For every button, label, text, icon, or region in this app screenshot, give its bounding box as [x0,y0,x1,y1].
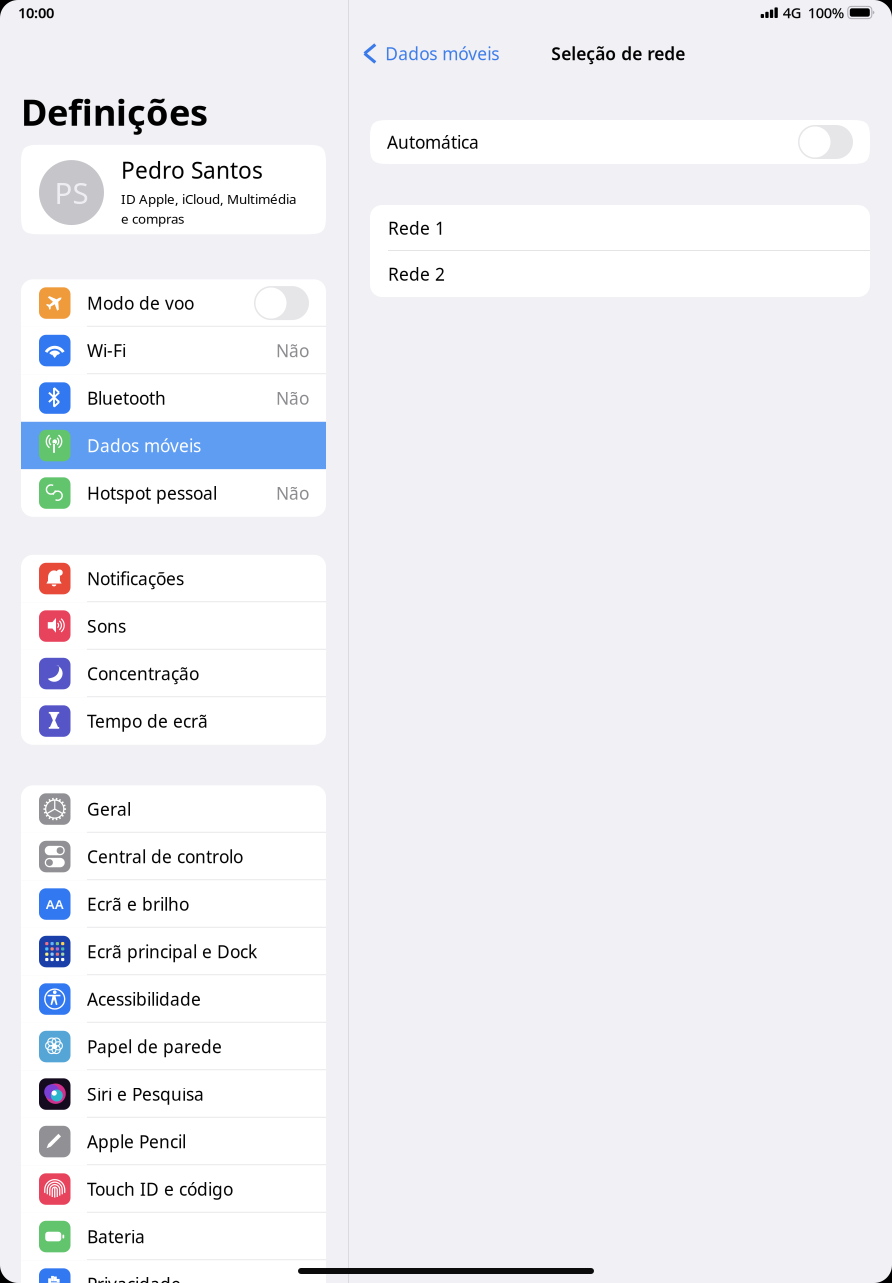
staticText: AA [46,895,64,913]
staticText: Siri e Pesquisa [87,1082,204,1105]
button[interactable]: Wi-Fi [21,327,326,374]
staticText: Não [276,339,309,362]
button[interactable]: Sons [21,602,326,650]
staticText: Bateria [87,1225,145,1248]
staticText: Bluetooth [87,386,166,409]
staticText: Tempo de ecrã [87,709,208,732]
staticText: 100% [808,3,844,22]
button[interactable]: Papel de parede [21,1023,326,1070]
staticText: Não [276,386,309,409]
staticText: Apple Pencil [87,1130,186,1153]
button[interactable]: Automática [370,120,870,164]
staticText: PS [54,173,88,212]
button[interactable]: Siri e Pesquisa [21,1070,326,1118]
staticText: e compras [121,210,184,227]
staticText: 4G [783,3,802,22]
staticText: Pedro Santos [121,155,263,185]
staticText: Dados móveis [87,434,201,457]
staticText: Modo de voo [87,291,194,314]
staticText: Papel de parede [87,1035,222,1058]
button[interactable]: Bluetooth [21,374,326,422]
staticText: Automática [387,130,479,153]
button[interactable]: Dados móveis [21,422,326,469]
button[interactable]: Ecrã principal e Dock [21,928,326,975]
button[interactable]: Geral [21,785,326,833]
button[interactable]: AA [21,880,326,928]
staticText: ID Apple, iCloud, Multimédia [121,190,296,208]
staticText: Hotspot pessoal [87,481,217,504]
button[interactable]: Hotspot pessoal [21,469,326,517]
button[interactable]: PS [21,145,326,234]
staticText: Touch ID e código [87,1177,233,1200]
staticText: Definições [21,88,208,136]
button[interactable]: Rede 1 [370,205,870,251]
button[interactable]: Privacidade [21,1260,326,1283]
button[interactable]: Notificações [21,555,326,602]
staticText: Notificações [87,567,184,590]
staticText: Privacidade [87,1272,181,1283]
staticText: Rede 2 [388,262,445,285]
button[interactable]: Acessibilidade [21,975,326,1023]
button[interactable]: Rede 2 [370,251,870,297]
staticText: Não [276,481,309,504]
staticText: Ecrã e brilho [87,892,189,915]
button[interactable]: Bateria [21,1213,326,1260]
button[interactable]: Concentração [21,650,326,697]
staticText: Wi-Fi [87,339,126,362]
staticText: Central de controlo [87,845,243,868]
button[interactable]: Dados móveis [349,36,507,71]
staticText: 10:00 [18,3,54,22]
staticText: Sons [87,614,126,637]
button[interactable]: Touch ID e código [21,1165,326,1213]
staticText: Acessibilidade [87,987,201,1010]
button[interactable]: Apple Pencil [21,1118,326,1165]
staticText: Concentração [87,662,199,685]
button[interactable]: Modo de voo [21,279,326,327]
button[interactable]: Central de controlo [21,833,326,880]
staticText: Seleção de rede [551,42,685,65]
staticText: Rede 1 [388,216,445,239]
staticText: Geral [87,797,131,820]
staticText: Dados móveis [385,42,499,65]
button[interactable]: Tempo de ecrã [21,697,326,745]
staticText: Ecrã principal e Dock [87,940,257,963]
